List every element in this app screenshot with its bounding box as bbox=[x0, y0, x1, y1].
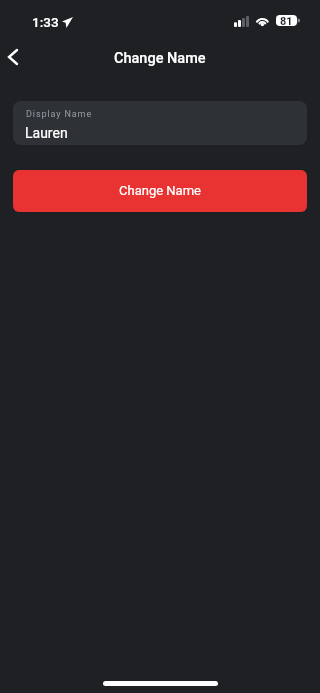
staticText: Display Name bbox=[26, 109, 93, 120]
staticText: Change Name bbox=[114, 50, 206, 67]
staticText: 81 bbox=[280, 15, 293, 26]
staticText: 1:33 bbox=[32, 14, 59, 30]
staticText: Change Name bbox=[119, 183, 201, 198]
button[interactable]: Back bbox=[0, 42, 32, 74]
staticText: Lauren bbox=[25, 125, 68, 141]
button[interactable]: Change Name bbox=[13, 170, 307, 212]
button[interactable]: Display Name bbox=[13, 101, 307, 145]
